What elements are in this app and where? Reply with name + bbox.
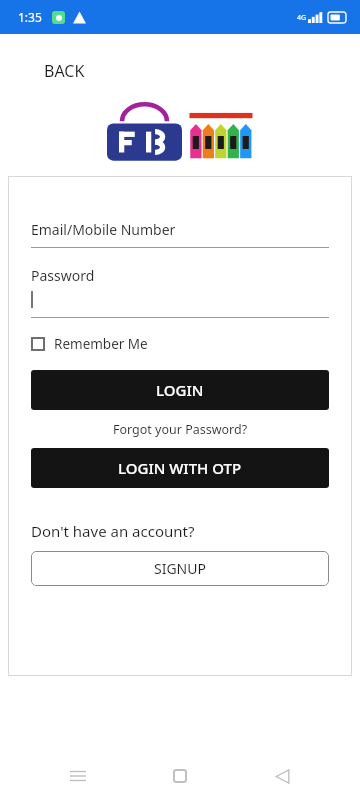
staticText: SIGNUP: [154, 559, 206, 578]
staticText: LOGIN: [156, 380, 204, 400]
button[interactable]: Remember Me: [31, 333, 148, 355]
button[interactable]: LOGIN: [31, 370, 329, 410]
staticText: Password: [31, 266, 95, 285]
button[interactable]: Home: [156, 752, 204, 800]
staticText: 1:35: [18, 9, 42, 25]
staticText: Email/Mobile Number: [31, 220, 176, 239]
staticText: Remember Me: [54, 335, 148, 353]
button[interactable]: Back: [258, 752, 306, 800]
button[interactable]: BACK: [42, 58, 87, 84]
button[interactable]: Forgot your Password?: [109, 419, 252, 440]
button[interactable]: SIGNUP: [31, 551, 329, 586]
staticText: Don't have an account?: [31, 521, 195, 541]
staticText: LOGIN WITH OTP: [118, 458, 242, 478]
button[interactable]: LOGIN WITH OTP: [31, 448, 329, 488]
staticText: Forgot your Password?: [113, 421, 248, 438]
staticText: BACK: [44, 60, 85, 82]
staticText: 4G: [297, 13, 307, 23]
button[interactable]: Recent apps: [54, 752, 102, 800]
